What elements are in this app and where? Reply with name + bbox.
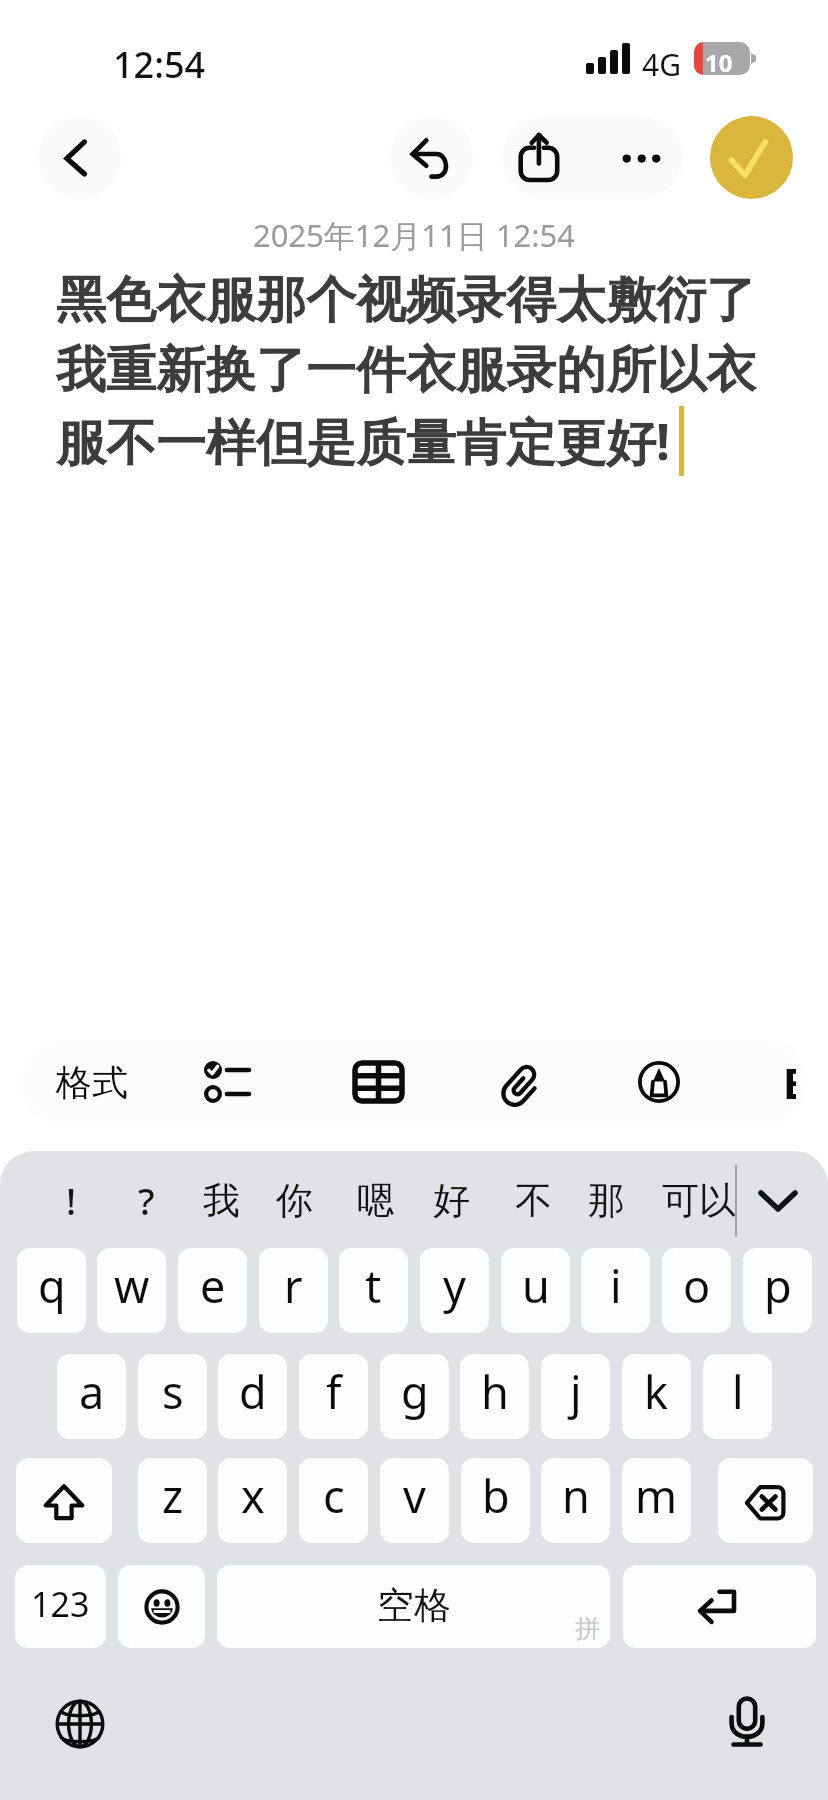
button[interactable]: v [380, 1458, 449, 1543]
staticText: k [644, 1361, 669, 1422]
staticText: m [635, 1465, 678, 1526]
button[interactable]: Back [38, 116, 121, 199]
button[interactable]: l [703, 1354, 772, 1439]
button[interactable]: n [541, 1458, 610, 1543]
staticText: b [482, 1465, 510, 1526]
button[interactable]: y [420, 1248, 489, 1333]
staticText: p [764, 1255, 792, 1316]
staticText: s [162, 1361, 184, 1422]
staticText: 10 [705, 46, 733, 79]
button[interactable]: ? [101, 1161, 191, 1239]
button[interactable]: Attach [471, 1040, 575, 1124]
staticText: i [610, 1255, 622, 1316]
staticText: h [481, 1361, 509, 1422]
button[interactable]: b [461, 1458, 530, 1543]
staticText: 那 [588, 1177, 625, 1224]
button[interactable]: 好 [406, 1161, 496, 1239]
button[interactable]: q [17, 1248, 86, 1333]
staticText: 12:54 [113, 40, 206, 89]
button[interactable]: z [138, 1458, 207, 1543]
staticText: j [570, 1361, 582, 1422]
button[interactable]: h [460, 1354, 529, 1439]
button[interactable]: m [622, 1458, 691, 1543]
staticText: 123 [31, 1581, 90, 1627]
staticText: u [522, 1255, 550, 1316]
button[interactable]: Bold [744, 1040, 796, 1124]
button[interactable]: 不 [488, 1161, 578, 1239]
button[interactable]: g [380, 1354, 449, 1439]
staticText: w [114, 1255, 150, 1316]
staticText: v [403, 1465, 426, 1526]
staticText: 黑色衣服那个视频录得太敷衍了 我重新换了一件衣服录的所以衣 服不一样但是质量肯定… [56, 269, 816, 475]
button[interactable]: 那 [561, 1161, 651, 1239]
staticText: f [326, 1361, 342, 1422]
button[interactable]: Share [502, 116, 592, 199]
staticText: 好 [433, 1177, 470, 1224]
staticText: g [401, 1361, 429, 1422]
staticText: 4G [642, 44, 681, 85]
button[interactable]: 你 [249, 1161, 339, 1239]
button[interactable]: Checklist [160, 1040, 294, 1124]
button[interactable]: t [339, 1248, 408, 1333]
button[interactable]: Draw [607, 1040, 711, 1124]
staticText: t [365, 1255, 382, 1316]
staticText: 不 [515, 1177, 552, 1224]
button[interactable]: Undo [390, 116, 473, 199]
staticText: ? [138, 1175, 155, 1225]
button[interactable]: k [622, 1354, 691, 1439]
button[interactable]: Voice input [711, 1686, 783, 1758]
button[interactable]: 嗯 [330, 1161, 420, 1239]
staticText: 你 [276, 1177, 313, 1224]
button[interactable]: More options [592, 116, 683, 199]
staticText: 拼 [575, 1613, 600, 1644]
staticText: q [38, 1255, 66, 1316]
button[interactable]: Collapse suggestions [748, 1165, 808, 1237]
staticText: z [162, 1465, 184, 1526]
staticText: 可以 [662, 1177, 736, 1224]
button[interactable]: 空格 [217, 1565, 610, 1648]
staticText: d [239, 1361, 267, 1422]
staticText: 空格 [377, 1582, 451, 1629]
button[interactable]: 可以 [654, 1161, 744, 1239]
button[interactable]: c [299, 1458, 368, 1543]
button[interactable]: Return [623, 1565, 816, 1648]
button[interactable]: Emoji [118, 1565, 205, 1648]
staticText: e [200, 1255, 226, 1316]
staticText: 格式 [56, 1060, 128, 1105]
button[interactable]: p [743, 1248, 812, 1333]
staticText: x [241, 1465, 265, 1526]
button[interactable]: i [581, 1248, 650, 1333]
button[interactable]: e [178, 1248, 247, 1333]
button[interactable]: r [259, 1248, 328, 1333]
button[interactable]: Done [710, 116, 793, 199]
button[interactable]: 格式 [30, 1040, 154, 1124]
button[interactable]: o [662, 1248, 731, 1333]
staticText: r [284, 1255, 303, 1316]
staticText: 我 [203, 1177, 240, 1224]
button[interactable]: f [299, 1354, 368, 1439]
button[interactable]: s [138, 1354, 207, 1439]
button[interactable]: Backspace [718, 1458, 813, 1543]
button[interactable]: u [501, 1248, 570, 1333]
button[interactable]: 123 [15, 1565, 106, 1648]
staticText: B [783, 1054, 796, 1111]
button[interactable]: w [97, 1248, 166, 1333]
button[interactable]: 我 [176, 1161, 266, 1239]
button[interactable]: j [541, 1354, 610, 1439]
button[interactable]: x [218, 1458, 287, 1543]
button[interactable]: Shift [16, 1458, 112, 1543]
staticText: o [683, 1255, 711, 1316]
staticText: y [443, 1255, 466, 1316]
staticText: n [562, 1465, 590, 1526]
button[interactable]: Table [326, 1040, 430, 1124]
button[interactable]: ! [26, 1161, 116, 1239]
button[interactable]: a [57, 1354, 126, 1439]
staticText: l [732, 1361, 744, 1422]
staticText: c [323, 1465, 345, 1526]
staticText: 2025年12月11日 12:54 [0, 214, 828, 256]
staticText: ! [66, 1175, 77, 1225]
staticText: a [79, 1361, 105, 1422]
button[interactable]: d [218, 1354, 287, 1439]
button[interactable]: Switch language [44, 1688, 116, 1760]
staticText: 嗯 [357, 1177, 394, 1224]
